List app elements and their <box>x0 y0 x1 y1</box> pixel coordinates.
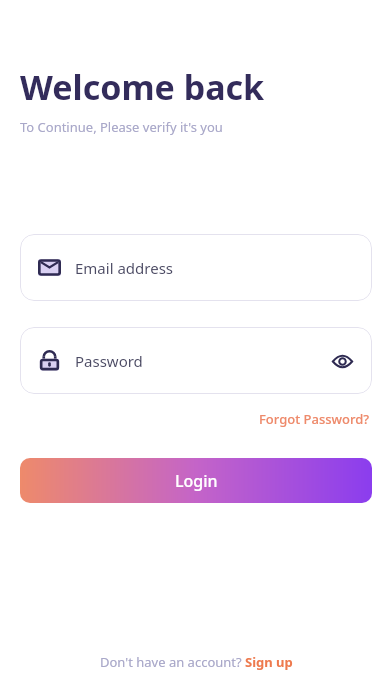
staticText: Forgot Password? <box>259 410 370 428</box>
staticText: Welcome back <box>20 64 265 110</box>
button[interactable]: Forgot Password? <box>257 408 372 430</box>
button[interactable]: Login <box>20 458 372 503</box>
button[interactable]: Show password <box>326 345 358 377</box>
staticText: To Continue, Please verify it's you <box>20 118 223 136</box>
staticText: Login <box>175 470 218 492</box>
staticText: Password <box>75 351 143 371</box>
staticText: Email address <box>75 258 174 278</box>
staticText: Don't have an account? Sign up <box>100 653 293 671</box>
button[interactable]: Password <box>20 327 372 394</box>
button[interactable]: Don't have an account? Sign up <box>96 650 297 674</box>
button[interactable]: Email address <box>20 234 372 301</box>
